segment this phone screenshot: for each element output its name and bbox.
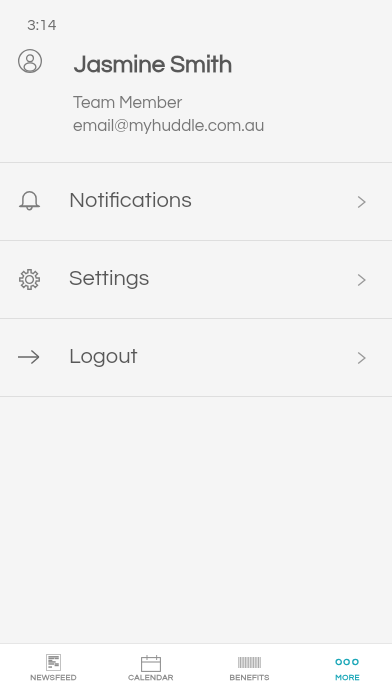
button[interactable]: Logout <box>0 318 392 395</box>
button[interactable]: BENEFITS <box>196 644 294 696</box>
staticText: CALENDAR <box>128 673 174 681</box>
staticText: Settings <box>69 267 150 290</box>
button[interactable]: Notifications <box>0 162 392 239</box>
button[interactable]: Settings <box>0 240 392 317</box>
staticText: MORE <box>335 673 360 681</box>
staticText: Team Member <box>73 94 183 112</box>
staticText: 3:14 <box>27 17 57 33</box>
staticText: BENEFITS <box>229 673 270 681</box>
staticText: Logout <box>69 345 138 368</box>
staticText: Notifications <box>69 189 192 212</box>
button[interactable]: MORE <box>294 644 392 696</box>
button[interactable]: CALENDAR <box>98 644 196 696</box>
staticText: Jasmine Smith <box>74 52 233 77</box>
staticText: NEWSFEED <box>30 673 77 681</box>
staticText: email@myhuddle.com.au <box>73 117 265 135</box>
button[interactable]: NEWSFEED <box>0 644 98 696</box>
